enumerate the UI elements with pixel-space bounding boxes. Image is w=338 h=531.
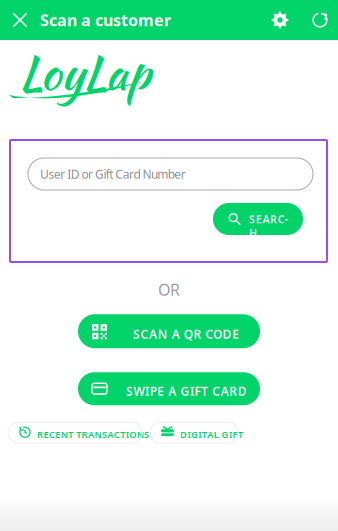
staticText: OR — [158, 279, 180, 300]
button[interactable]: Refresh — [300, 0, 338, 40]
staticText: SWIPE A GIFT CARD — [126, 383, 247, 399]
button[interactable]: Close — [0, 0, 40, 40]
button[interactable]: DIGITAL GIFT — [150, 422, 238, 443]
staticText: DIGITAL GIFT — [180, 428, 243, 441]
staticText: User ID or Gift Card Number — [40, 166, 186, 182]
button[interactable]: SEARCH — [213, 203, 303, 235]
staticText: LoyLap — [19, 39, 150, 107]
staticText: SCAN A QR CODE — [133, 326, 239, 342]
button[interactable]: SWIPE A GIFT CARD — [78, 372, 260, 405]
staticText: SEARCH — [249, 212, 293, 226]
staticText: Scan a customer — [40, 9, 171, 31]
button[interactable]: Scan a customer — [40, 0, 220, 40]
button[interactable]: SCAN A QR CODE — [78, 314, 260, 348]
button[interactable]: RECENT TRANSACTIONS — [8, 422, 142, 443]
button[interactable]: Settings — [260, 0, 300, 40]
staticText: RECENT TRANSACTIONS — [37, 428, 149, 441]
